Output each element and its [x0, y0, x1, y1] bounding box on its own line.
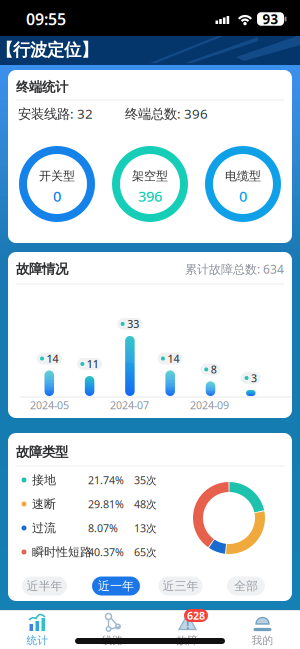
staticText: !	[186, 616, 189, 632]
staticText: 65次	[134, 545, 157, 559]
staticText: 统计	[26, 634, 48, 647]
staticText: 累计故障总数: 634	[185, 261, 284, 277]
staticText: 13次	[134, 521, 157, 535]
staticText: 11	[87, 357, 99, 371]
staticText: 40.37%	[88, 545, 124, 559]
button[interactable]: 我的	[225, 610, 300, 649]
button[interactable]: !	[150, 610, 225, 649]
staticText: 速断	[32, 497, 56, 511]
staticText: 2024-05	[30, 398, 69, 412]
staticText: 09:55	[26, 8, 66, 30]
button[interactable]: 线路	[75, 610, 150, 649]
staticText: 8	[211, 362, 217, 377]
staticText: 14	[167, 351, 179, 366]
staticText: 安装线路: 32	[18, 105, 93, 122]
staticText: 过流	[32, 521, 56, 535]
staticText: 近三年	[162, 579, 198, 593]
button[interactable]: 近半年	[22, 576, 67, 595]
staticText: 瞬时性短路	[32, 545, 92, 559]
staticText: 线路	[101, 634, 123, 647]
staticText: 14	[46, 351, 58, 366]
staticText: 0	[239, 186, 247, 206]
staticText: 2024-07	[110, 398, 149, 412]
button[interactable]: 近一年	[92, 576, 140, 595]
staticText: 0	[53, 186, 61, 206]
staticText: 21.74%	[88, 473, 124, 487]
staticText: 33	[127, 317, 139, 331]
staticText: 8.07%	[88, 521, 118, 535]
staticText: 终端统计	[16, 79, 68, 95]
staticText: 终端总数: 396	[125, 105, 208, 122]
staticText: 接地	[32, 473, 56, 487]
staticText: 故障类型	[16, 444, 68, 460]
staticText: 我的	[251, 634, 273, 647]
staticText: 【行波定位】	[0, 39, 98, 61]
staticText: 628	[187, 608, 205, 623]
button[interactable]: 近三年	[158, 576, 202, 595]
staticText: 29.81%	[88, 497, 124, 511]
staticText: 35次	[134, 473, 157, 487]
staticText: 近半年	[26, 579, 62, 593]
staticText: 开关型	[39, 169, 75, 183]
staticText: 93	[262, 10, 278, 28]
staticText: 故障情况	[16, 261, 68, 277]
staticText: 2024-09	[190, 398, 229, 412]
button[interactable]: 统计	[0, 610, 75, 649]
staticText: 故障	[176, 634, 198, 647]
staticText: 近一年	[98, 579, 134, 593]
staticText: 48次	[134, 497, 157, 511]
staticText: 全部	[234, 579, 258, 593]
staticText: 电缆型	[225, 169, 261, 183]
staticText: 3	[251, 371, 257, 385]
staticText: 396	[138, 186, 162, 206]
button[interactable]: 全部	[227, 576, 265, 595]
staticText: 架空型	[132, 169, 168, 183]
